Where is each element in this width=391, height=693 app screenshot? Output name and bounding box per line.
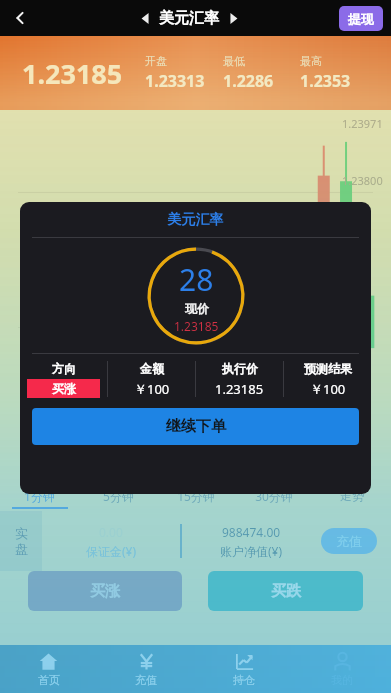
staticText: 最高 xyxy=(300,54,322,68)
staticText: 15分钟 xyxy=(177,488,215,504)
staticText: 1.23185 xyxy=(174,318,219,334)
staticText: 最低 xyxy=(223,54,245,68)
staticText: 充值 xyxy=(135,673,157,687)
staticText: 1.2286 xyxy=(223,70,274,92)
staticText: 持仓 xyxy=(233,673,255,687)
staticText: 买涨 xyxy=(52,381,76,396)
button[interactable]: Back xyxy=(0,0,40,36)
staticText: ￥100 xyxy=(134,380,170,398)
button[interactable]: 走势 xyxy=(313,485,391,511)
button[interactable]: 5分钟 xyxy=(79,485,157,511)
staticText: 1.2353 xyxy=(300,70,351,92)
staticText: 30分钟 xyxy=(255,488,293,504)
staticText: 实 xyxy=(15,525,28,541)
button[interactable]: 30分钟 xyxy=(235,485,313,511)
staticText: 账户净值(¥) xyxy=(220,543,283,559)
staticText: 美元汇率 xyxy=(159,9,219,28)
staticText: 1.23971 xyxy=(342,116,383,131)
staticText: 988474.00 xyxy=(222,524,281,540)
button[interactable]: 买跌 xyxy=(208,571,363,611)
button[interactable]: 实 xyxy=(0,511,42,571)
staticText: 1.23800 xyxy=(342,173,383,188)
button[interactable]: 充值 xyxy=(97,645,195,693)
staticText: ￥100 xyxy=(310,380,346,398)
staticText: 执行价 xyxy=(222,361,258,376)
staticText: 金额 xyxy=(140,361,164,376)
button[interactable]: Previous xyxy=(131,4,159,32)
staticText: 买跌 xyxy=(271,582,301,601)
staticText: 5分钟 xyxy=(103,488,134,504)
staticText: 走势 xyxy=(340,488,364,503)
button[interactable]: 15分钟 xyxy=(157,485,235,511)
staticText: 1.23185 xyxy=(215,380,264,398)
button[interactable]: Next xyxy=(219,4,247,32)
staticText: 1.23313 xyxy=(145,70,205,92)
staticText: 盘 xyxy=(15,541,28,557)
staticText: 28 xyxy=(179,259,214,300)
staticText: 保证金(¥) xyxy=(86,543,137,559)
button[interactable]: 充值 xyxy=(321,528,377,554)
staticText: 买涨 xyxy=(90,582,120,601)
staticText: 1分钟 xyxy=(24,488,55,504)
staticText: 美元汇率 xyxy=(20,211,371,229)
staticText: 充值 xyxy=(336,533,362,549)
button[interactable]: 买涨 xyxy=(28,571,182,611)
button[interactable]: 首页 xyxy=(0,645,97,693)
staticText: 方向 xyxy=(52,361,76,376)
staticText: 继续下单 xyxy=(166,417,226,436)
staticText: 开盘 xyxy=(145,54,167,68)
button[interactable]: 提现 xyxy=(339,6,383,31)
staticText: 首页 xyxy=(38,673,60,687)
button[interactable]: 1分钟 xyxy=(0,485,79,511)
staticText: 1.23185 xyxy=(22,55,123,92)
staticText: 提现 xyxy=(348,11,374,27)
button[interactable]: 继续下单 xyxy=(32,408,359,445)
button[interactable]: 持仓 xyxy=(195,645,293,693)
staticText: 现价 xyxy=(185,301,209,316)
staticText: 预测结果 xyxy=(304,361,352,376)
